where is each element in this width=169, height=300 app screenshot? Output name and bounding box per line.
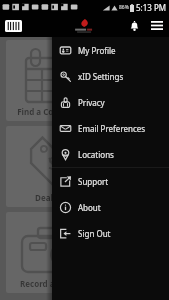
staticText: 86% [119,4,129,11]
button[interactable]: Open menu [145,14,169,37]
button[interactable]: My Profile [52,37,169,63]
staticText: Find a Coupon [17,106,74,117]
staticText: My Profile [78,45,116,56]
staticText: Support [78,176,109,187]
staticText: xID Settings [78,71,124,82]
button[interactable]: Notifications [123,15,145,37]
button[interactable]: xID Settings [52,63,169,89]
button[interactable]: Sign Out [52,220,169,246]
button[interactable]: Support [52,168,169,194]
staticText: Email Preferences [78,123,146,134]
button[interactable]: Email Preferences [52,115,169,141]
button[interactable]: Find a Coupon [6,40,163,121]
button[interactable]: Locations [52,141,169,167]
staticText: Deals [35,192,57,203]
button[interactable]: Privacy [52,89,169,115]
staticText: 5:13 PM [136,2,167,13]
staticText: Sign Out [78,228,111,239]
staticText: Privacy [78,97,105,108]
staticText: About [78,202,101,213]
button[interactable]: Record a Win [6,212,163,293]
staticText: Locations [78,149,114,160]
button[interactable]: Deals [6,126,163,207]
button[interactable]: Scan barcode [3,17,24,35]
staticText: Record a Win [20,278,72,289]
button[interactable]: About [52,194,169,220]
